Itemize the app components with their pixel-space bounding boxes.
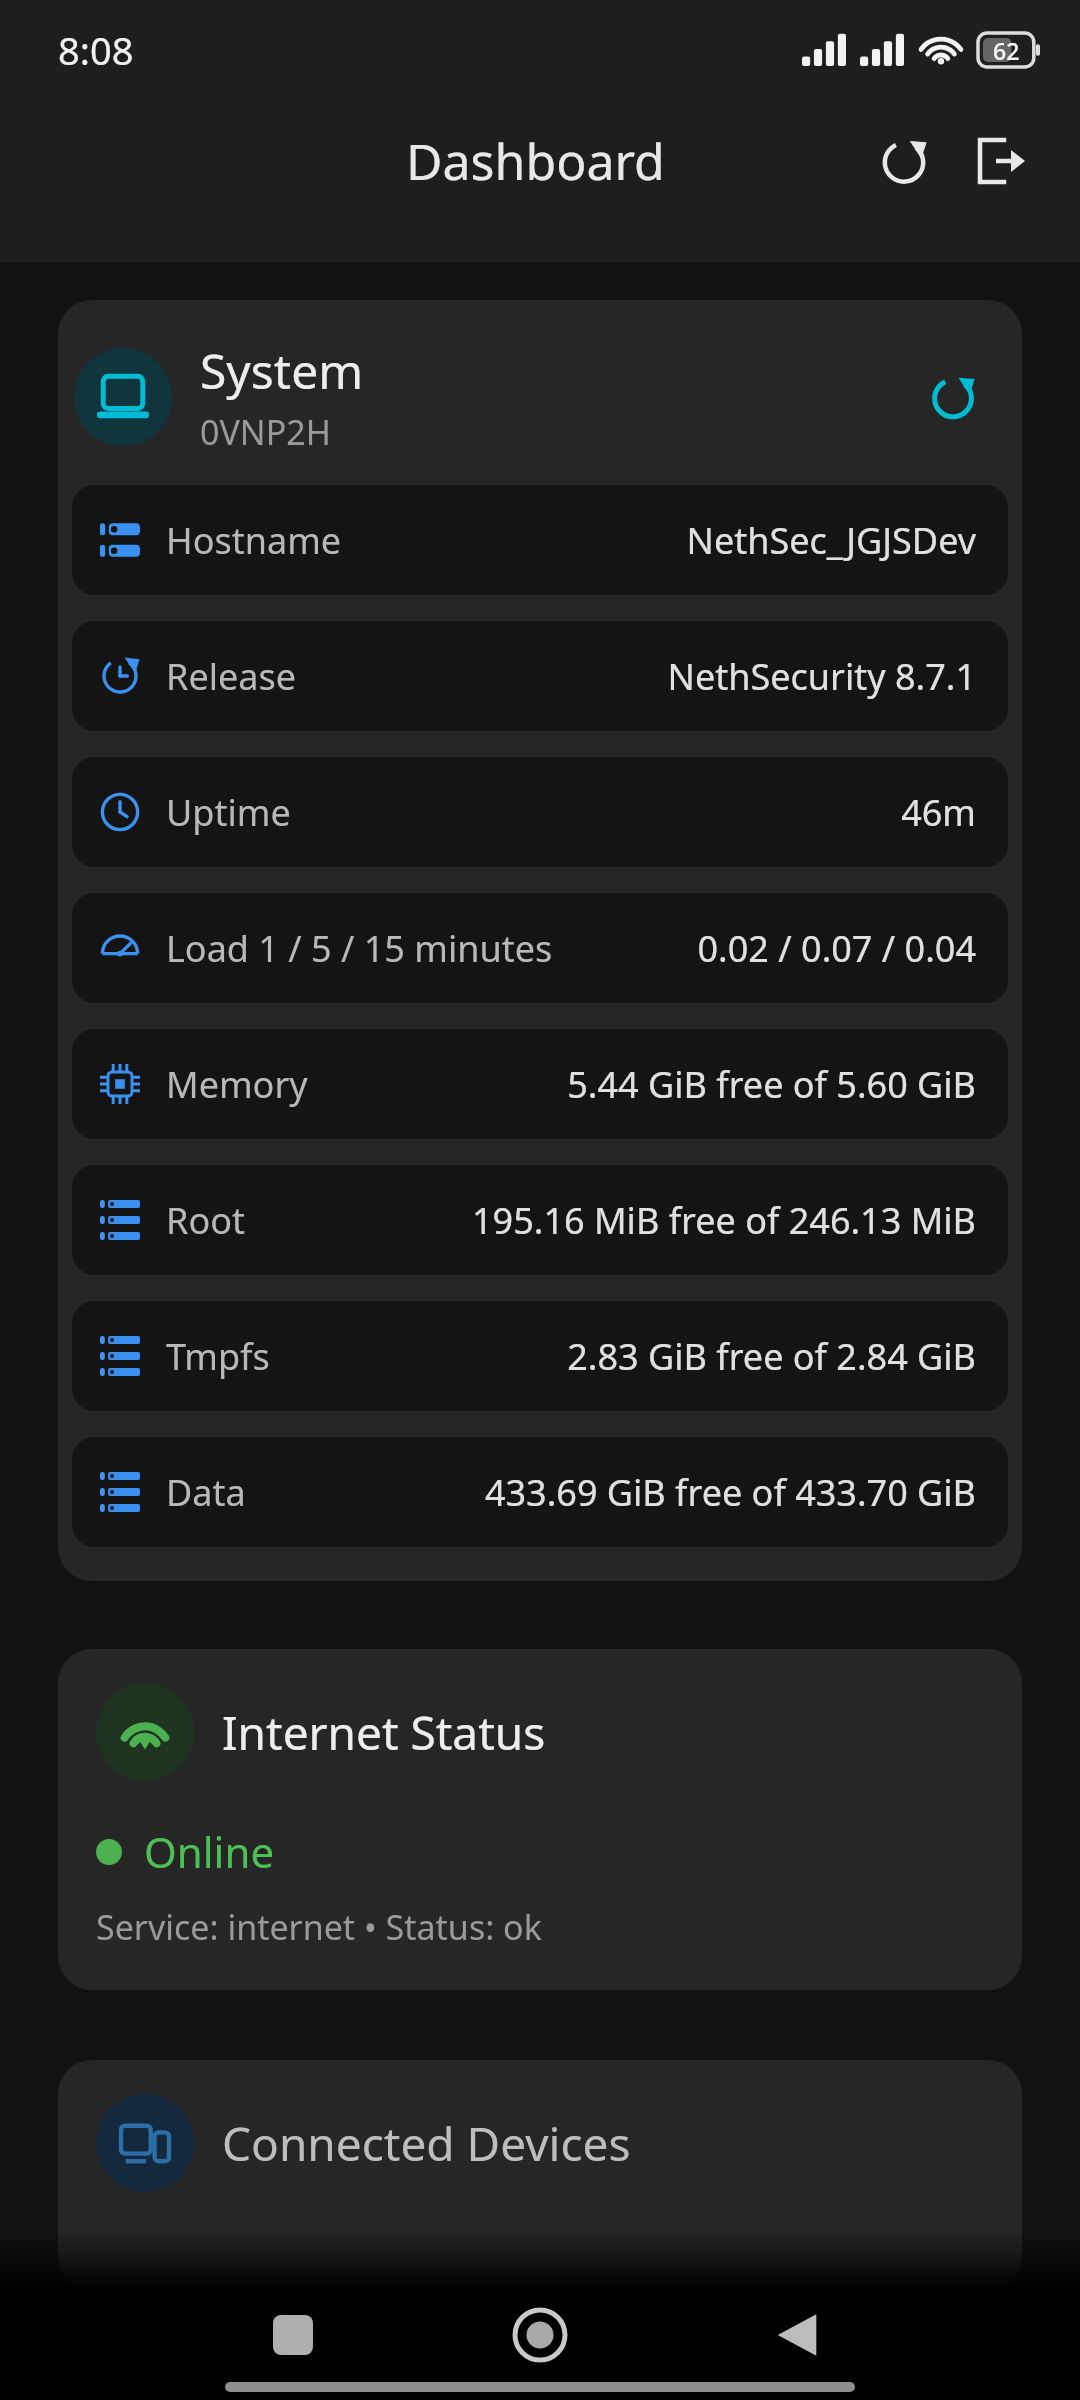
staticText: NethSec_JGJSDev xyxy=(686,516,976,565)
button[interactable]: Connected Devices xyxy=(58,2060,1022,2290)
button[interactable]: Uptime xyxy=(72,757,1008,867)
staticText: 0.02 / 0.07 / 0.04 xyxy=(697,924,976,973)
button[interactable]: Recent apps xyxy=(258,2300,328,2370)
staticText: Uptime xyxy=(166,788,291,837)
staticText: 2.83 GiB free of 2.84 GiB xyxy=(567,1332,976,1381)
staticText: Memory xyxy=(166,1060,308,1109)
staticText: 0VNP2H xyxy=(200,409,331,455)
button[interactable]: Refresh system xyxy=(910,354,996,440)
staticText: Service: internet • Status: ok xyxy=(96,1904,542,1950)
button[interactable]: Root xyxy=(72,1165,1008,1275)
staticText: Connected Devices xyxy=(222,2112,631,2175)
button[interactable]: Tmpfs xyxy=(72,1301,1008,1411)
staticText: Hostname xyxy=(166,516,342,565)
staticText: Load 1 / 5 / 15 minutes xyxy=(166,924,553,973)
staticText: 62 xyxy=(993,35,1020,66)
staticText: Dashboard xyxy=(406,127,665,195)
button[interactable]: Load 1 / 5 / 15 minutes xyxy=(72,893,1008,1003)
button[interactable]: Memory xyxy=(72,1029,1008,1139)
staticText: Tmpfs xyxy=(166,1332,270,1381)
staticText: 195.16 MiB free of 246.13 MiB xyxy=(471,1196,976,1245)
staticText: Online xyxy=(144,1823,275,1880)
staticText: Release xyxy=(166,652,297,701)
button[interactable]: Home xyxy=(500,2295,580,2375)
staticText: Root xyxy=(166,1196,245,1245)
staticText: System xyxy=(200,338,364,403)
staticText: Data xyxy=(166,1468,246,1517)
button[interactable]: Refresh xyxy=(858,115,950,207)
staticText: 5.44 GiB free of 5.60 GiB xyxy=(567,1060,976,1109)
staticText: Internet Status xyxy=(222,1701,546,1764)
staticText: 8:08 xyxy=(58,24,134,76)
staticText: 46m xyxy=(901,788,976,837)
button[interactable]: Logout xyxy=(954,115,1046,207)
button[interactable]: Release xyxy=(72,621,1008,731)
button[interactable]: Hostname xyxy=(72,485,1008,595)
button[interactable]: Data xyxy=(72,1437,1008,1547)
staticText: NethSecurity 8.7.1 xyxy=(667,652,976,701)
button[interactable]: Internet Status xyxy=(58,1649,1022,1990)
button[interactable]: System xyxy=(74,338,1006,455)
button[interactable]: Back xyxy=(762,2300,832,2370)
staticText: 433.69 GiB free of 433.70 GiB xyxy=(484,1468,976,1517)
